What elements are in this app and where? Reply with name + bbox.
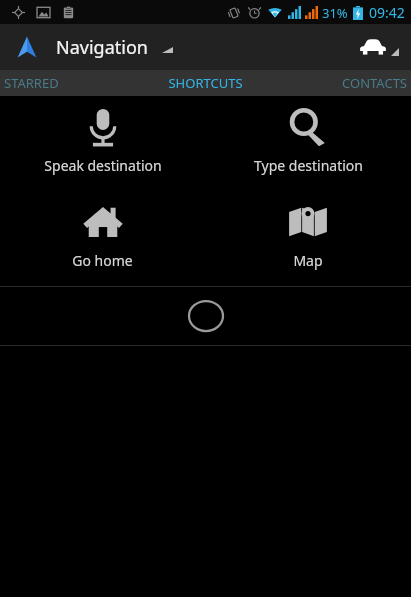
button[interactable]: Navigation: [0, 24, 183, 70]
staticText: CONTACTS: [342, 74, 407, 92]
button[interactable]: Transport mode: driving: [347, 24, 411, 70]
staticText: SHORTCUTS: [168, 74, 243, 92]
button[interactable]: SHORTCUTS: [137, 70, 274, 96]
button[interactable]: Type destination: [205, 96, 411, 191]
staticText: 09:42: [369, 3, 405, 22]
staticText: STARRED: [4, 74, 59, 92]
button[interactable]: Speak destination: [0, 96, 205, 191]
staticText: Map: [293, 251, 323, 270]
staticText: Type destination: [254, 156, 363, 175]
other: Navigation: [14, 34, 40, 60]
button[interactable]: CONTACTS: [274, 70, 411, 96]
staticText: Speak destination: [44, 156, 162, 175]
staticText: Go home: [72, 251, 133, 270]
button[interactable]: Map: [205, 191, 411, 286]
staticText: 31%: [322, 4, 348, 22]
button[interactable]: Go home: [0, 191, 205, 286]
staticText: Navigation: [56, 35, 148, 60]
button[interactable]: STARRED: [0, 70, 137, 96]
